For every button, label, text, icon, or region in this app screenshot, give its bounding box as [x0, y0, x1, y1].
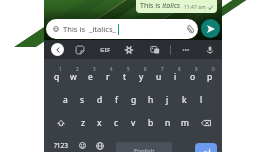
other: Attach — [186, 25, 195, 34]
button[interactable]: f — [108, 88, 125, 111]
staticText: g — [131, 94, 137, 106]
staticText: 11:47 am — [184, 4, 206, 11]
button[interactable]: Language — [91, 134, 108, 152]
button[interactable]: Toolbar action — [150, 45, 160, 55]
staticText: 1 — [59, 66, 62, 72]
staticText: z — [81, 117, 85, 129]
staticText: English — [134, 147, 155, 152]
staticText: w — [70, 71, 77, 83]
staticText: y — [139, 71, 144, 83]
button[interactable]: i — [167, 65, 184, 88]
staticText: n — [165, 117, 171, 129]
button[interactable]: Toolbar action — [205, 45, 215, 55]
button[interactable]: e — [82, 65, 99, 88]
button[interactable]: v — [125, 111, 142, 134]
button[interactable]: d — [91, 88, 108, 111]
staticText: 0 — [212, 66, 215, 72]
staticText: b — [148, 117, 154, 129]
button[interactable]: t — [116, 65, 133, 88]
button[interactable]: More options — [181, 45, 191, 55]
button[interactable]: p — [201, 65, 218, 88]
button[interactable]: l — [193, 88, 210, 111]
staticText: 9 — [195, 66, 198, 72]
staticText: 2 — [76, 66, 79, 72]
button[interactable]: Enter — [195, 143, 217, 152]
staticText: 7 — [161, 66, 164, 72]
button[interactable]: GIF — [98, 45, 112, 55]
staticText: o — [190, 71, 196, 83]
button[interactable]: Toolbar action — [75, 45, 85, 55]
button[interactable]: j — [159, 88, 176, 111]
button[interactable]: y — [133, 65, 150, 88]
staticText: l — [200, 94, 203, 106]
staticText: This is italics — [140, 1, 181, 11]
staticText: s — [80, 94, 85, 106]
button[interactable]: Toolbar action — [124, 45, 134, 55]
button[interactable]: a — [57, 88, 74, 111]
button[interactable]: b — [142, 111, 159, 134]
button[interactable]: Back — [51, 43, 64, 56]
staticText: 5 — [127, 66, 130, 72]
button[interactable]: h — [142, 88, 159, 111]
button[interactable]: s — [74, 88, 91, 111]
staticText: u — [156, 71, 162, 83]
button[interactable]: c — [108, 111, 125, 134]
button[interactable]: g — [125, 88, 142, 111]
staticText: q — [54, 71, 60, 83]
button[interactable]: Backspace — [193, 111, 219, 134]
staticText: 4 — [110, 66, 113, 72]
staticText: 6 — [144, 66, 147, 72]
staticText: x — [97, 117, 102, 129]
staticText: This is _italics_ — [63, 24, 116, 34]
staticText: i — [174, 71, 177, 83]
button[interactable]: Emoji — [74, 134, 91, 152]
staticText: 8 — [178, 66, 181, 72]
button[interactable]: z — [74, 111, 91, 134]
button[interactable]: English — [116, 142, 172, 152]
button[interactable]: Send — [201, 19, 220, 38]
staticText: m — [181, 117, 189, 129]
staticText: c — [114, 117, 119, 129]
staticText: r — [106, 71, 110, 83]
staticText: a — [63, 94, 68, 106]
staticText: p — [207, 71, 213, 83]
button[interactable]: This is italics — [140, 1, 213, 11]
staticText: e — [88, 71, 93, 83]
staticText: f — [115, 94, 118, 106]
button[interactable]: This is _italics_ — [53, 19, 195, 39]
staticText: GIF — [100, 46, 111, 54]
button[interactable]: k — [176, 88, 193, 111]
button[interactable]: n — [159, 111, 176, 134]
button[interactable]: o — [184, 65, 201, 88]
button[interactable]: u — [150, 65, 167, 88]
button[interactable]: m — [176, 111, 193, 134]
staticText: d — [97, 94, 103, 106]
staticText: v — [131, 117, 136, 129]
button[interactable]: r — [99, 65, 116, 88]
staticText: h — [148, 94, 154, 106]
staticText: t — [123, 71, 127, 83]
button[interactable]: x — [91, 111, 108, 134]
button[interactable]: Shift — [48, 111, 74, 134]
button[interactable]: w — [65, 65, 82, 88]
button[interactable]: ?123 — [48, 134, 74, 152]
button[interactable]: q — [48, 65, 65, 88]
staticText: k — [182, 94, 187, 106]
staticText: j — [166, 94, 169, 106]
staticText: 3 — [93, 66, 96, 72]
staticText: ?123 — [54, 141, 68, 150]
